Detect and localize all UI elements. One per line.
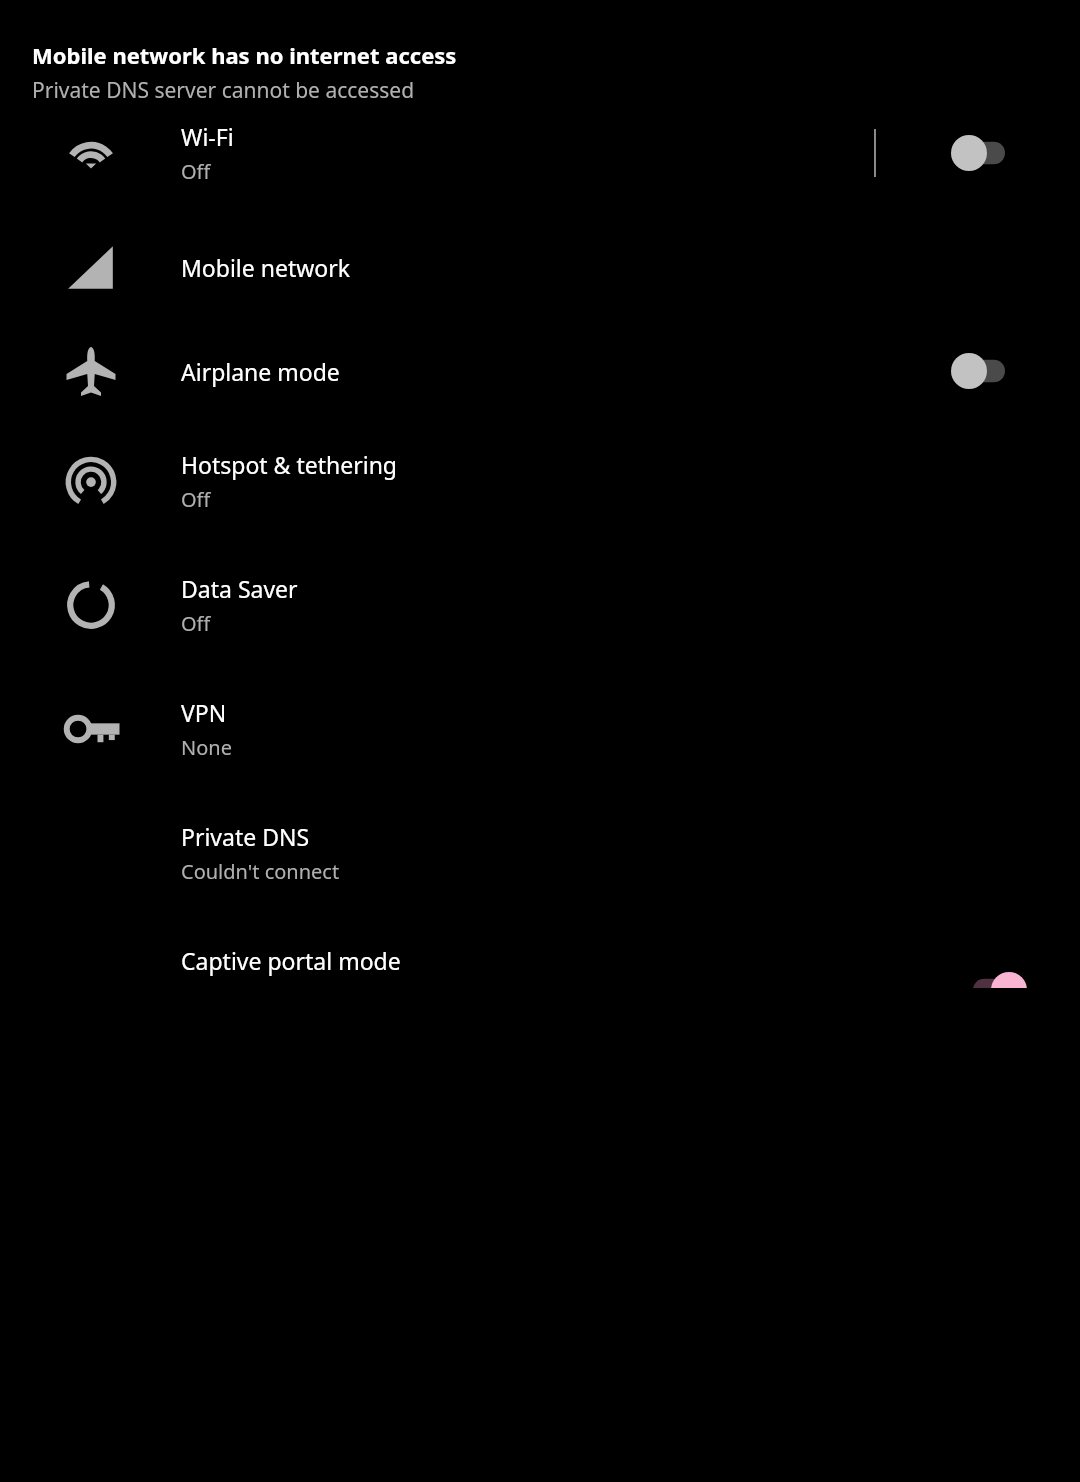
button[interactable]: Captive portal mode bbox=[0, 915, 1080, 988]
staticText: Mobile network has no internet access bbox=[32, 40, 457, 70]
staticText: Off bbox=[181, 486, 211, 513]
button[interactable]: Toggle captive portal mode bbox=[920, 972, 1080, 988]
staticText: Airplane mode bbox=[181, 356, 340, 387]
staticText: VPN bbox=[181, 697, 227, 728]
button[interactable]: Data Saver bbox=[0, 543, 1080, 667]
staticText: Off bbox=[181, 158, 211, 185]
staticText: Off bbox=[181, 610, 211, 637]
staticText: None bbox=[181, 734, 232, 761]
button[interactable]: Private DNS bbox=[0, 791, 1080, 915]
staticText: Wi-Fi bbox=[181, 125, 234, 152]
staticText: Captive portal mode bbox=[181, 945, 401, 976]
button[interactable]: Airplane mode bbox=[0, 323, 1080, 419]
staticText: Private DNS server cannot be accessed bbox=[32, 76, 415, 105]
button[interactable]: VPN bbox=[0, 667, 1080, 791]
staticText: Hotspot & tethering bbox=[181, 449, 397, 480]
staticText: Couldn't connect bbox=[181, 858, 340, 885]
staticText: Mobile network bbox=[181, 252, 351, 283]
button[interactable]: Hotspot & tethering bbox=[0, 419, 1080, 543]
button[interactable]: Toggle Airplane mode bbox=[876, 353, 1080, 389]
staticText: Private DNS bbox=[181, 821, 310, 852]
staticText: Data Saver bbox=[181, 573, 298, 604]
button[interactable]: Mobile network bbox=[0, 211, 1080, 323]
button[interactable]: Toggle Wi-Fi bbox=[876, 135, 1080, 171]
button[interactable]: Wi-Fi bbox=[0, 125, 1080, 209]
